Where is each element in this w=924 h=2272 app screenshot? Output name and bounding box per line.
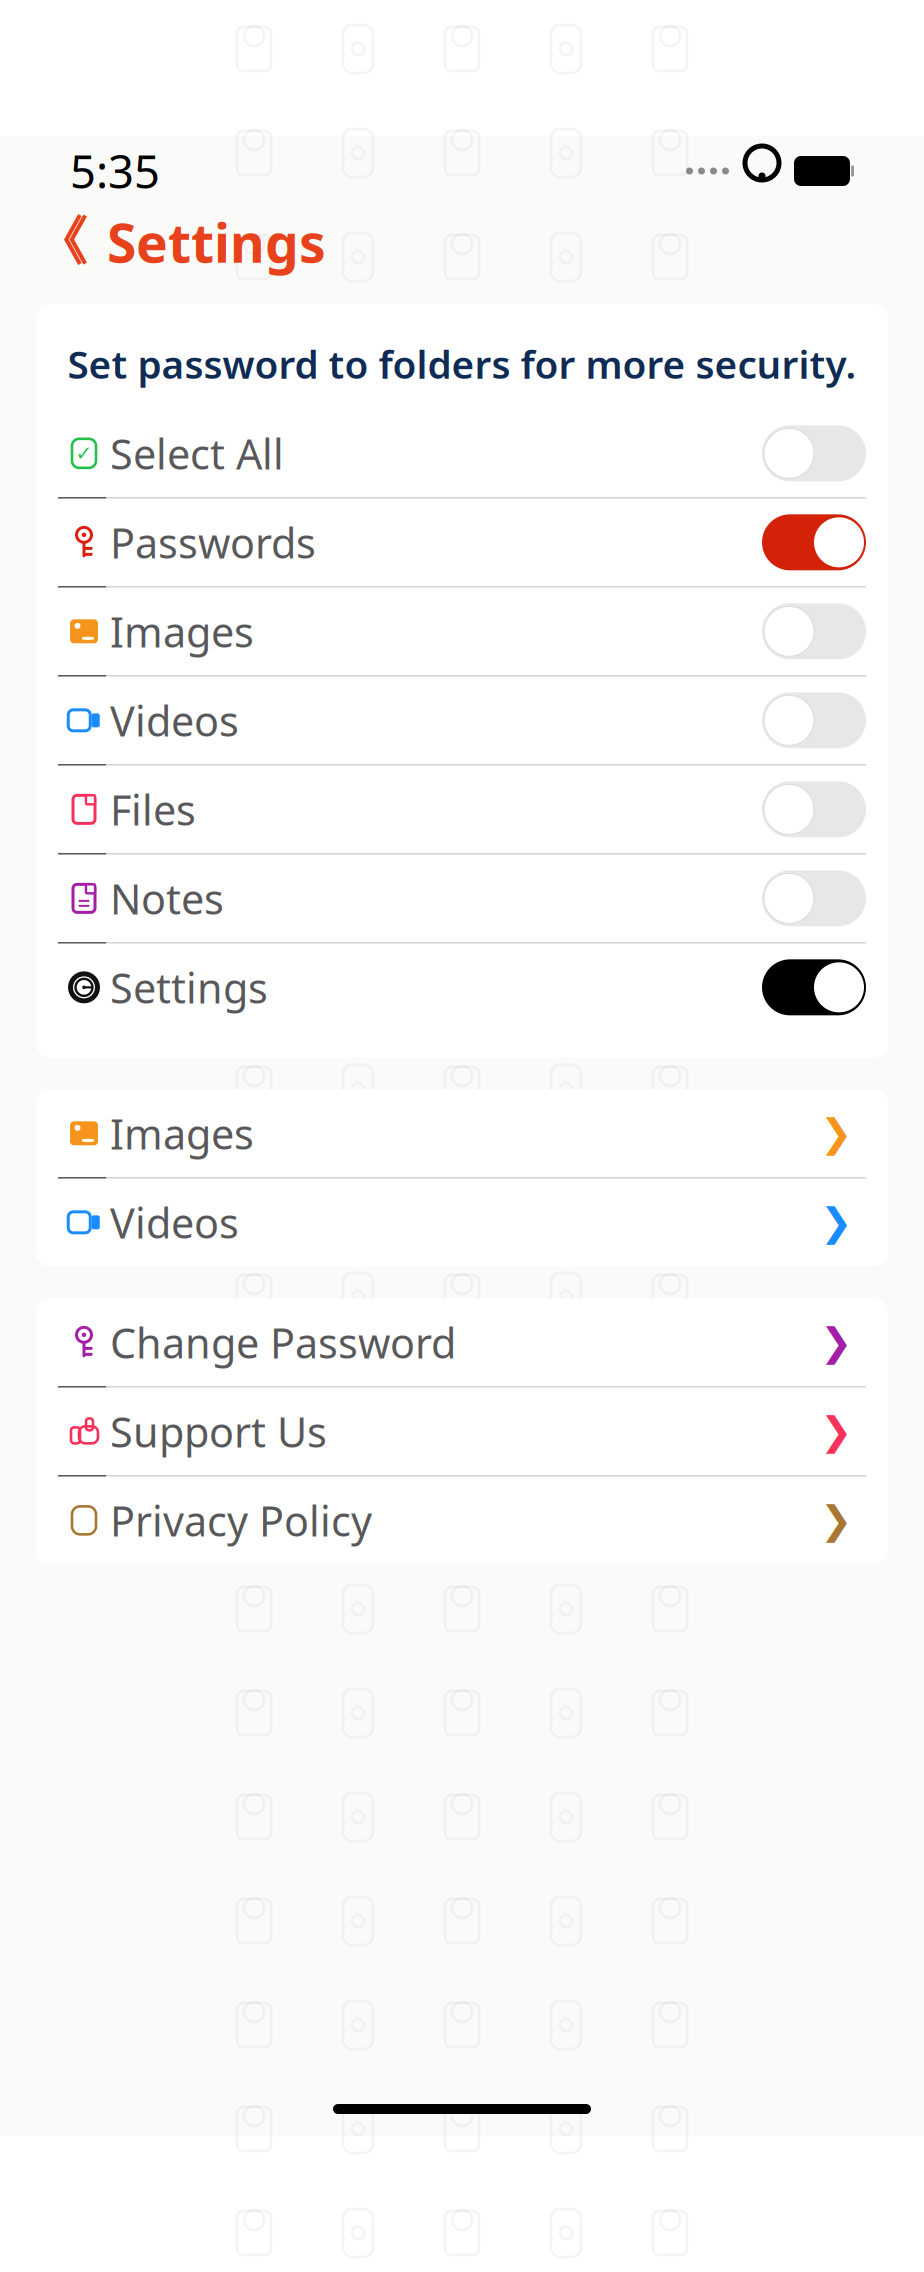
button[interactable]: ✓ xyxy=(36,409,888,497)
button[interactable]: Files xyxy=(36,765,888,853)
staticText: Videos xyxy=(110,693,239,748)
button[interactable]: Images xyxy=(36,1089,888,1177)
staticText: ❯ xyxy=(820,1498,852,1542)
staticText: ❯ xyxy=(820,1111,852,1155)
staticText: 5:35 xyxy=(70,141,160,201)
button[interactable]: Images xyxy=(36,587,888,675)
button[interactable]: Privacy Policy xyxy=(36,1476,888,1564)
button[interactable]: Settings xyxy=(36,943,888,1031)
button[interactable]: Change Password xyxy=(36,1298,888,1386)
staticText: Settings xyxy=(110,960,268,1015)
staticText: Set password to folders for more securit… xyxy=(67,338,856,389)
staticText: Passwords xyxy=(110,515,316,570)
button[interactable]: Passwords xyxy=(36,498,888,586)
button[interactable]: Videos xyxy=(36,676,888,764)
staticText: ✓ xyxy=(75,442,92,465)
staticText: Settings xyxy=(107,207,326,277)
button[interactable]: Videos xyxy=(36,1178,888,1266)
staticText: Select All xyxy=(110,426,284,481)
staticText: ❯ xyxy=(820,1200,852,1244)
button[interactable]: Support Us xyxy=(36,1387,888,1475)
staticText: Notes xyxy=(110,871,224,926)
staticText: Change Password xyxy=(110,1315,456,1370)
staticText: Privacy Policy xyxy=(110,1493,372,1548)
staticText: Images xyxy=(110,604,254,659)
staticText: Images xyxy=(110,1106,254,1161)
staticText: ❯ xyxy=(820,1409,852,1453)
button[interactable]: Notes xyxy=(36,854,888,942)
staticText: Files xyxy=(110,782,196,837)
staticText: Videos xyxy=(110,1195,239,1250)
staticText: Support Us xyxy=(110,1404,327,1459)
button[interactable]: Back xyxy=(30,203,91,281)
staticText: 《 xyxy=(34,209,87,275)
staticText: ❯ xyxy=(820,1320,852,1364)
